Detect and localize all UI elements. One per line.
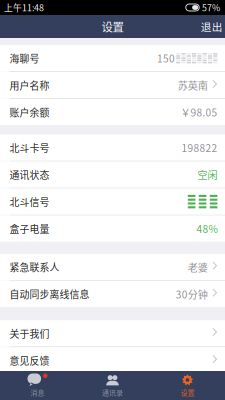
staticText: 自动同步离线信息 xyxy=(9,287,89,301)
staticText: 48% xyxy=(196,221,217,236)
staticText: 通讯状态 xyxy=(9,167,49,182)
staticText: 30分钟 xyxy=(176,287,208,301)
button[interactable]: 紧急联系人 xyxy=(0,254,225,280)
staticText: 150 xyxy=(157,51,175,66)
staticText: 198822 xyxy=(181,140,217,155)
staticText: 北斗卡号 xyxy=(9,140,49,155)
staticText: 北斗信号 xyxy=(9,194,49,209)
button[interactable]: 消息 xyxy=(0,371,75,400)
staticText: 老婆 xyxy=(188,260,208,274)
staticText: 设置 xyxy=(101,18,123,35)
button[interactable]: 盒子电量 xyxy=(0,215,225,242)
staticText: 消息 xyxy=(30,387,44,397)
staticText: 上午11:48 xyxy=(4,1,44,14)
button[interactable]: 意见反馈 xyxy=(0,347,225,374)
staticText: 设置 xyxy=(180,387,194,397)
staticText: ￥98.05 xyxy=(180,105,217,120)
button[interactable]: 北斗信号 xyxy=(0,188,225,215)
button[interactable]: 海聊号 xyxy=(0,45,225,71)
button[interactable]: 北斗卡号 xyxy=(0,134,225,161)
button[interactable]: 通讯状态 xyxy=(0,161,225,188)
staticText: 海聊号 xyxy=(9,51,39,65)
staticText: 空闲 xyxy=(197,167,217,182)
staticText: 盒子电量 xyxy=(9,221,49,236)
button[interactable]: 设置 xyxy=(150,371,225,400)
button[interactable]: 账户余额 xyxy=(0,99,225,125)
button[interactable]: 用户名称 xyxy=(0,72,225,98)
staticText: 意见反馈 xyxy=(9,353,49,368)
button[interactable]: 关于我们 xyxy=(0,320,225,347)
staticText: 关于我们 xyxy=(9,326,49,341)
staticText: 苏英南 xyxy=(178,78,208,93)
staticText: 通讯录 xyxy=(102,387,123,397)
staticText: 57% xyxy=(202,1,220,14)
button[interactable]: 通讯录 xyxy=(75,371,150,400)
button[interactable]: 退出 xyxy=(193,14,225,39)
staticText: 紧急联系人 xyxy=(9,260,59,274)
staticText: 账户余额 xyxy=(9,105,49,119)
staticText: 用户名称 xyxy=(9,78,49,92)
staticText: 退出 xyxy=(201,19,223,34)
button[interactable]: 自动同步离线信息 xyxy=(0,281,225,307)
